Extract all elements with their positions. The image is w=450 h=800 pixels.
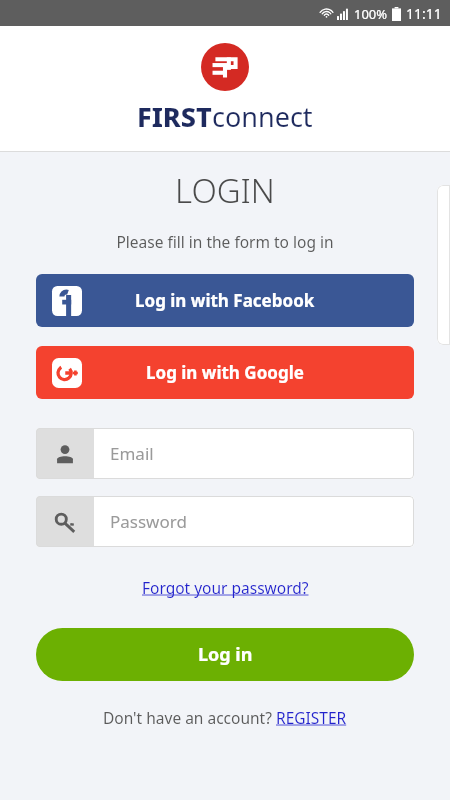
staticText: Forgot your password? [142, 577, 309, 598]
staticText: LOGIN [175, 168, 275, 213]
staticText: Log in [198, 642, 253, 667]
staticText: connect [212, 98, 313, 135]
staticText: 11:11 [406, 4, 442, 23]
button[interactable]: Password [36, 496, 414, 547]
staticText: Don't have an account? [103, 707, 276, 728]
button[interactable]: REGISTER [276, 707, 347, 728]
staticText: Log in with Google [146, 361, 304, 384]
staticText: Password [110, 510, 187, 533]
button[interactable]: Email [36, 428, 414, 479]
staticText: Email [110, 442, 154, 465]
button[interactable]: Log in [36, 628, 414, 681]
staticText: REGISTER [276, 707, 347, 728]
button[interactable]: Log in with Google [36, 346, 414, 399]
staticText: Log in with Facebook [135, 289, 315, 312]
staticText: Please fill in the form to log in [116, 231, 334, 252]
button[interactable]: Log in with Facebook [36, 274, 414, 327]
button[interactable]: Forgot your password? [134, 573, 317, 602]
staticText: FIRST [137, 98, 212, 135]
staticText: 100% [354, 5, 388, 23]
